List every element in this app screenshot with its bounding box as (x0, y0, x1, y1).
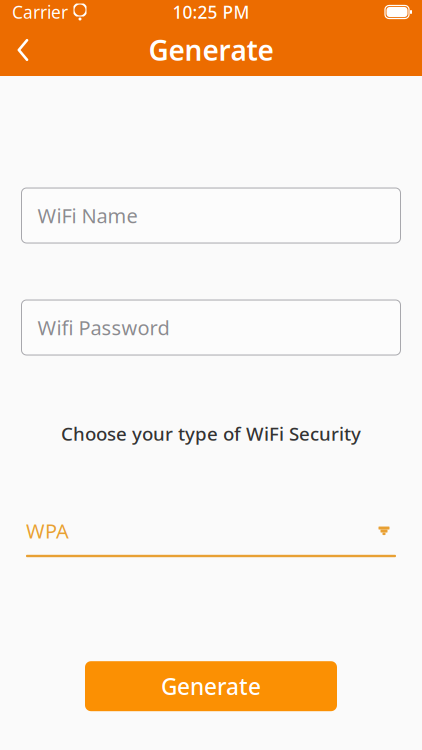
button[interactable]: Wifi Password (21, 300, 400, 355)
staticText: Generate (161, 671, 261, 701)
staticText: Choose your type of WiFi Security (61, 421, 361, 446)
staticText: Wifi Password (37, 314, 169, 341)
staticText: WiFi Name (37, 202, 137, 229)
button[interactable]: WiFi security type: WPA (26, 518, 396, 557)
staticText: Generate (148, 31, 273, 69)
staticText: 10:25 PM (172, 0, 249, 23)
staticText: WPA (26, 517, 69, 544)
staticText: Carrier (12, 0, 68, 23)
button[interactable]: Generate (85, 661, 337, 711)
button[interactable]: Back (0, 24, 46, 76)
button[interactable]: WiFi Name (21, 188, 400, 243)
